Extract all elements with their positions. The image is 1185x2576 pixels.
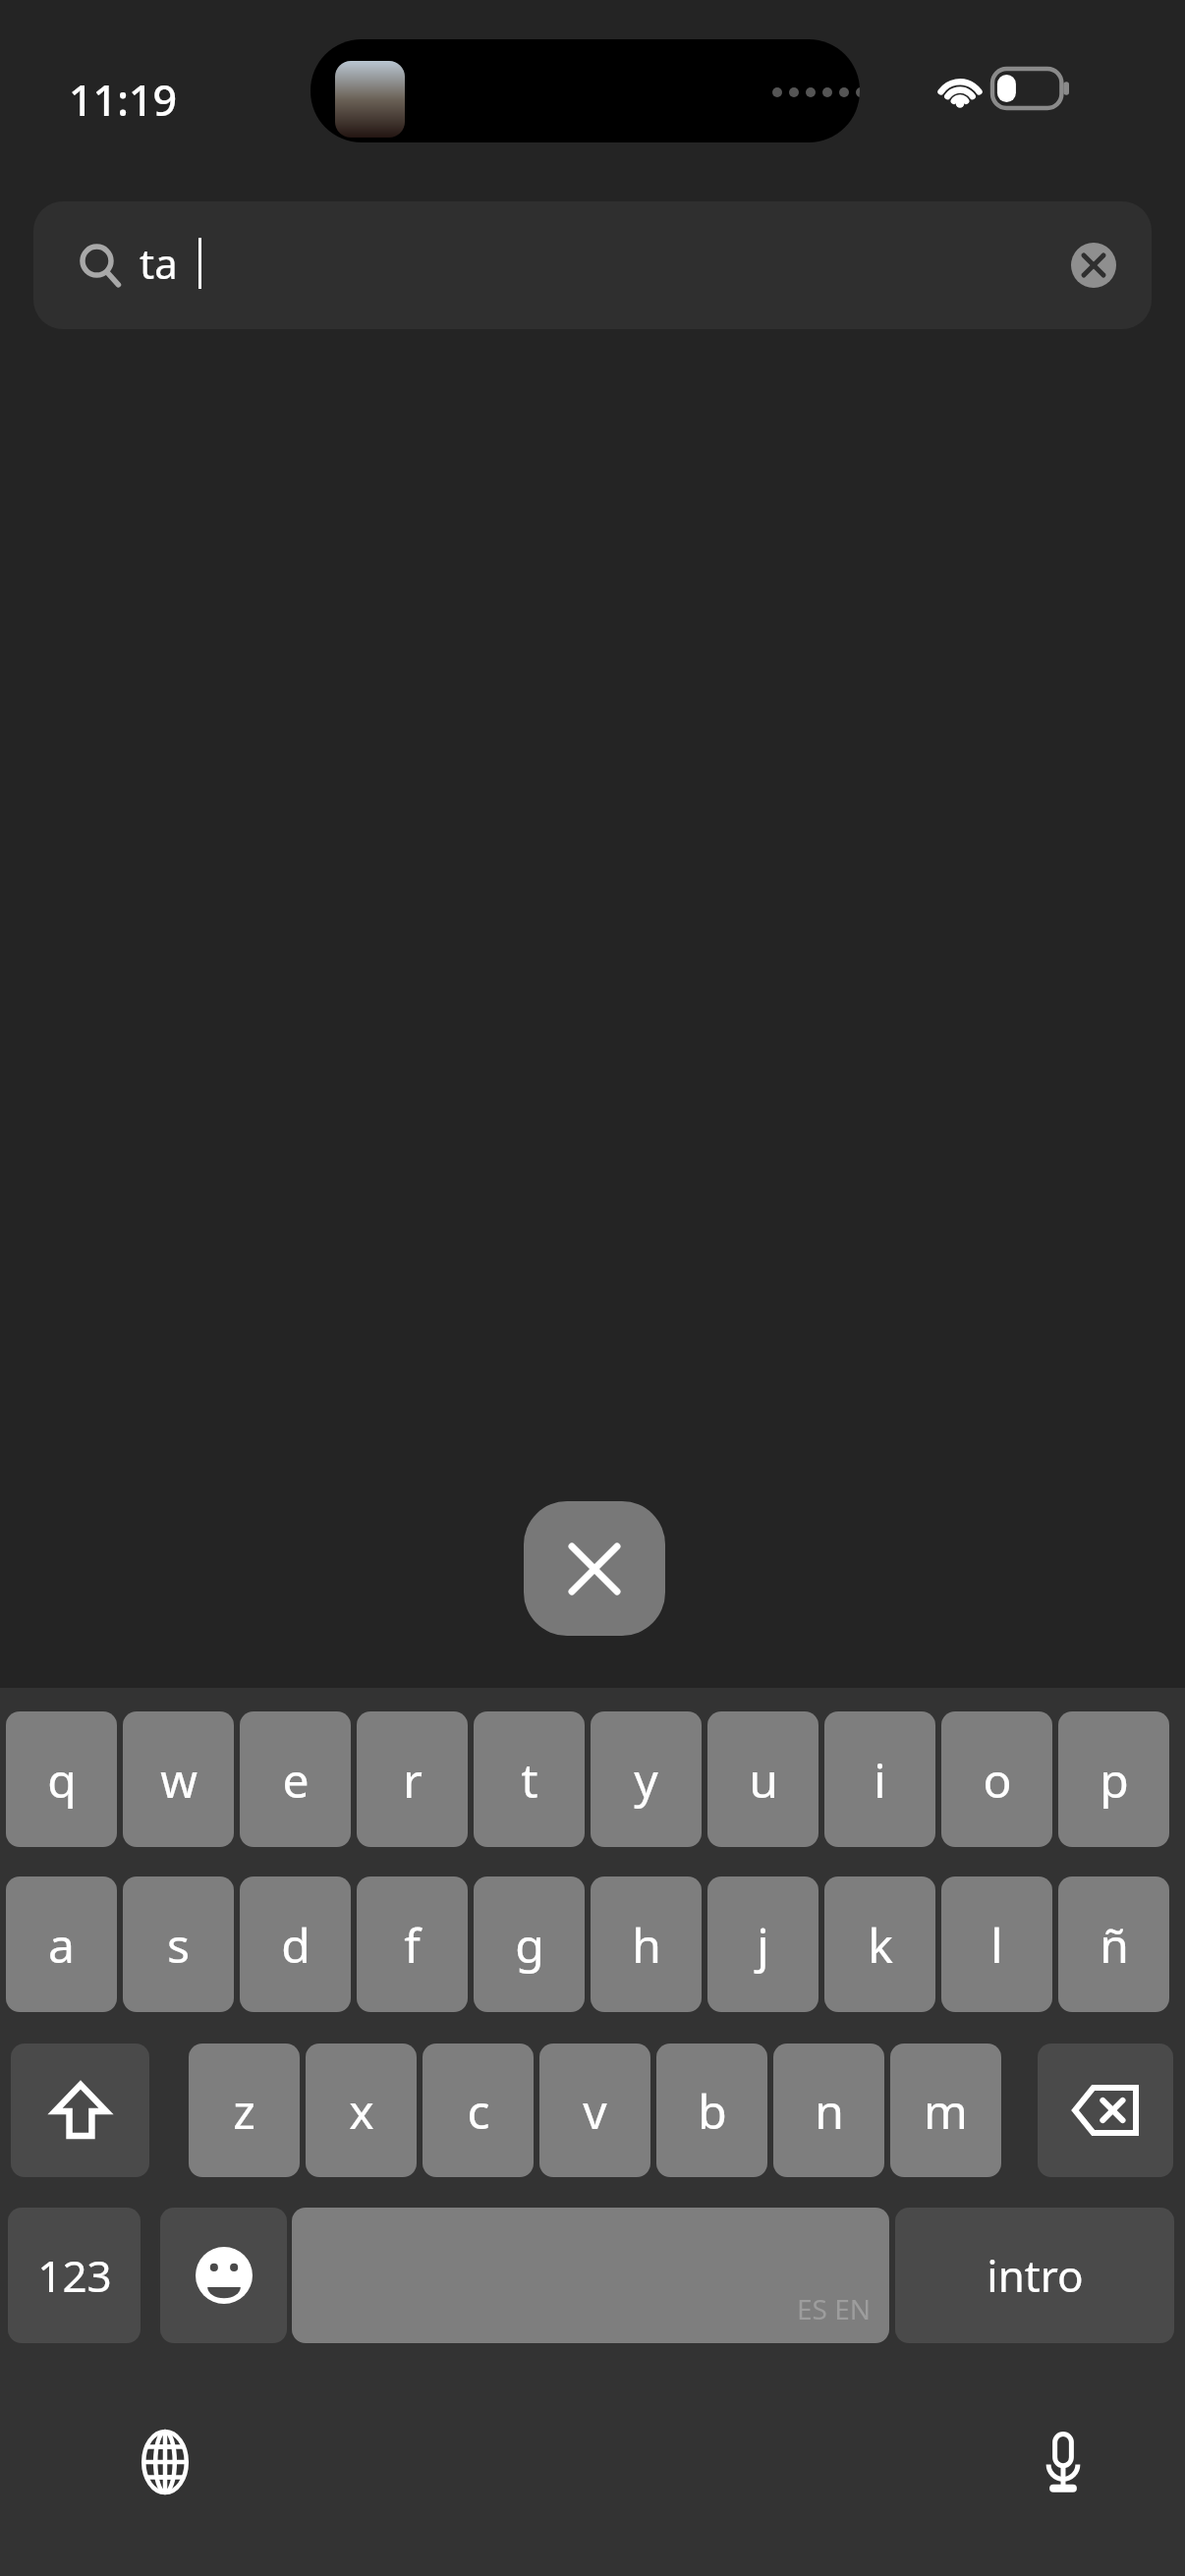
staticText: p [1100, 1748, 1129, 1812]
other: Battery [992, 69, 1071, 108]
staticText: m [924, 2079, 968, 2143]
button[interactable]: ta [33, 201, 1152, 329]
staticText: k [868, 1913, 893, 1977]
button[interactable]: c [423, 2044, 534, 2177]
staticText: g [515, 1913, 544, 1977]
staticText: intro [987, 2246, 1084, 2305]
button[interactable]: Change language [126, 2423, 204, 2501]
button[interactable]: f [357, 1876, 468, 2012]
staticText: v [583, 2079, 607, 2143]
button[interactable]: u [707, 1711, 818, 1847]
button[interactable]: x [306, 2044, 417, 2177]
staticText: o [983, 1748, 1012, 1812]
button[interactable]: Shift [11, 2044, 149, 2177]
button[interactable]: a [6, 1876, 117, 2012]
button[interactable]: g [474, 1876, 585, 2012]
button[interactable]: m [890, 2044, 1001, 2177]
staticText: z [233, 2079, 255, 2143]
staticText: q [47, 1748, 77, 1812]
staticText: w [160, 1748, 197, 1812]
button[interactable]: Space [292, 2208, 889, 2343]
staticText: u [749, 1748, 778, 1812]
button[interactable]: s [123, 1876, 234, 2012]
staticText: e [282, 1748, 310, 1812]
staticText: 123 [37, 2246, 112, 2305]
button[interactable]: intro [895, 2208, 1174, 2343]
button[interactable]: 123 [8, 2208, 141, 2343]
staticText: s [167, 1913, 190, 1977]
button[interactable]: v [539, 2044, 650, 2177]
staticText: a [48, 1913, 75, 1977]
staticText: n [815, 2079, 844, 2143]
button[interactable]: q [6, 1711, 117, 1847]
button[interactable]: b [656, 2044, 767, 2177]
staticText: j [757, 1913, 769, 1977]
button[interactable]: Clear search [1071, 243, 1116, 288]
staticText: c [467, 2079, 490, 2143]
staticText: l [990, 1913, 1003, 1977]
button[interactable]: ñ [1058, 1876, 1169, 2012]
staticText: i [874, 1748, 886, 1812]
button[interactable]: e [240, 1711, 351, 1847]
button[interactable]: d [240, 1876, 351, 2012]
staticText: ta [140, 235, 178, 291]
button[interactable]: Emoji [160, 2208, 287, 2343]
button[interactable]: r [357, 1711, 468, 1847]
button[interactable]: h [591, 1876, 702, 2012]
staticText: t [521, 1748, 538, 1812]
other: Wi-Fi [935, 67, 985, 108]
button[interactable]: t [474, 1711, 585, 1847]
staticText: r [403, 1748, 423, 1812]
button[interactable]: i [824, 1711, 935, 1847]
staticText: ES EN [797, 2290, 872, 2327]
button[interactable]: w [123, 1711, 234, 1847]
button[interactable]: l [941, 1876, 1052, 2012]
staticText: x [349, 2079, 374, 2143]
button[interactable]: z [189, 2044, 300, 2177]
staticText: f [404, 1913, 421, 1977]
button[interactable]: n [773, 2044, 884, 2177]
button[interactable]: y [591, 1711, 702, 1847]
button[interactable]: Voice input [1024, 2423, 1102, 2501]
button[interactable]: p [1058, 1711, 1169, 1847]
staticText: d [281, 1913, 310, 1977]
staticText: h [632, 1913, 661, 1977]
staticText: 11:19 [69, 71, 178, 129]
staticText: ñ [1100, 1913, 1129, 1977]
button[interactable]: j [707, 1876, 818, 2012]
staticText: b [698, 2079, 727, 2143]
button[interactable]: k [824, 1876, 935, 2012]
button[interactable]: o [941, 1711, 1052, 1847]
staticText: y [634, 1748, 658, 1812]
button[interactable]: Backspace [1038, 2044, 1173, 2177]
button[interactable]: Close [524, 1501, 665, 1636]
